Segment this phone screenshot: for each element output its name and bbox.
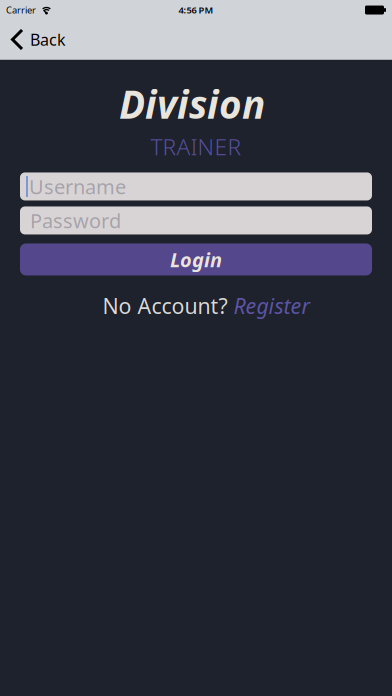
staticText: Carrier xyxy=(6,4,36,16)
button[interactable]: Register xyxy=(233,291,309,320)
staticText: Password xyxy=(30,207,121,234)
staticText: TRAINER xyxy=(150,131,241,161)
staticText: Username xyxy=(29,173,126,200)
button[interactable]: Back xyxy=(0,29,66,50)
button[interactable]: Login xyxy=(20,243,372,275)
staticText: 4:56 PM xyxy=(178,4,213,16)
button[interactable]: Password xyxy=(20,206,372,234)
staticText: Register xyxy=(233,291,309,320)
staticText: Login xyxy=(170,246,222,273)
staticText: Division xyxy=(119,78,265,129)
button[interactable]: Username xyxy=(20,172,372,200)
staticText: No Account? xyxy=(102,291,227,320)
staticText: Back xyxy=(30,29,66,50)
